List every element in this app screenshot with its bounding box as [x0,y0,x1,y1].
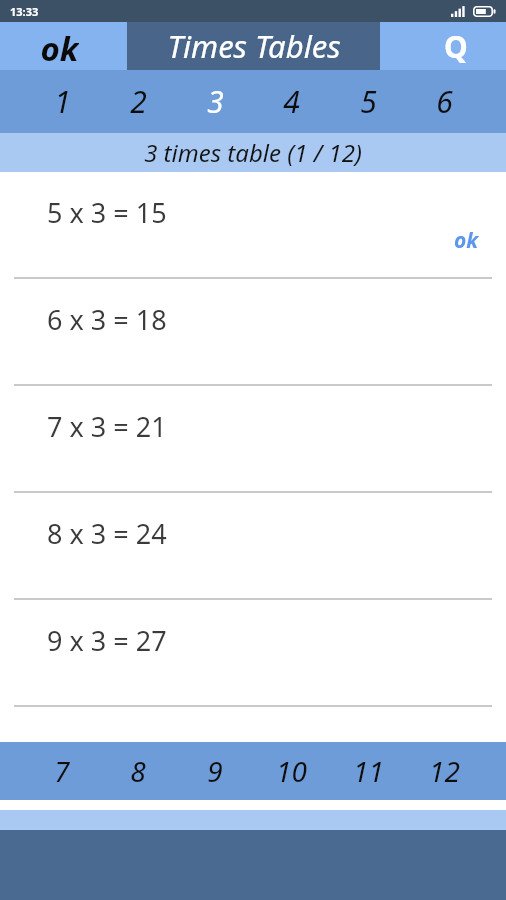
button[interactable]: 3 [187,70,243,133]
staticText: 2 [130,81,147,122]
button[interactable]: 10 [263,742,319,800]
staticText: 13:33 [10,4,39,19]
staticText: 9 [207,752,223,790]
staticText: ok [40,26,79,66]
button[interactable]: 8 x 3 = 24 [0,493,506,600]
button[interactable]: 6 x 3 = 18 [0,279,506,386]
staticText: 3 times table (1 / 12) [144,136,362,169]
button[interactable]: 9 [187,742,243,800]
staticText: ok [454,226,479,255]
staticText: 8 [130,752,146,790]
staticText: 10 [276,752,307,790]
staticText: 7 x 3 = 21 [47,408,167,445]
staticText: 4 [283,81,300,122]
button[interactable]: 2 [110,70,166,133]
staticText: Q [444,26,468,66]
staticText: 5 [360,81,377,122]
button[interactable]: 5 x 3 = 15 [0,172,506,279]
button[interactable]: Quiz [436,22,476,70]
staticText: 6 [436,81,453,122]
staticText: 12 [429,752,460,790]
button[interactable]: ok [34,22,85,70]
button[interactable]: 8 [110,742,166,800]
button[interactable]: 7 [34,742,90,800]
button[interactable]: 1 [34,70,90,133]
button[interactable]: 6 [416,70,472,133]
button[interactable]: 7 x 3 = 21 [0,386,506,493]
staticText: 7 [54,752,70,790]
button[interactable]: 4 [263,70,319,133]
button[interactable]: 5 [340,70,396,133]
staticText: 3 [207,81,224,122]
button[interactable]: 9 x 3 = 27 [0,600,506,707]
staticText: 8 x 3 = 24 [47,515,167,552]
staticText: 1 [54,81,71,122]
staticText: Times Tables [167,25,341,67]
staticText: 9 x 3 = 27 [47,622,167,659]
button[interactable]: 12 [416,742,472,800]
staticText: 11 [353,752,384,790]
staticText: 5 x 3 = 15 [47,194,167,231]
button[interactable]: 11 [340,742,396,800]
staticText: 6 x 3 = 18 [47,301,167,338]
